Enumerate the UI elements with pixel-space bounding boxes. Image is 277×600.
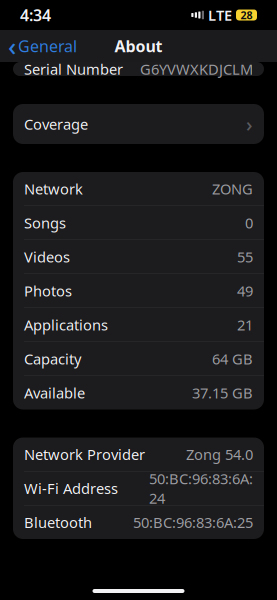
staticText: General (18, 35, 77, 57)
staticText: About (114, 35, 162, 57)
staticText: Videos (24, 247, 70, 266)
staticText: Capacity (24, 349, 81, 368)
staticText: Applications (24, 315, 108, 334)
staticText: Wi-Fi Address (24, 478, 118, 498)
staticText: G6YVWXKDJCLM (140, 59, 253, 79)
staticText: Available (24, 383, 85, 402)
staticText: Photos (24, 281, 72, 300)
staticText: 0 (245, 213, 253, 232)
staticText: 55 (237, 247, 253, 266)
staticText: 37.15 GB (192, 383, 253, 402)
staticText: › (246, 111, 253, 137)
staticText: Network (24, 179, 83, 198)
staticText: 64 GB (212, 349, 253, 368)
staticText: Bluetooth (24, 512, 92, 532)
staticText: 50:BC:96:83:6A:24 (149, 469, 253, 508)
button[interactable]: ‹ (0, 24, 77, 68)
staticText: Network Provider (24, 444, 145, 464)
staticText: 4:34 (20, 4, 51, 26)
staticText: 21 (237, 315, 253, 334)
staticText: LTE (208, 5, 232, 25)
staticText: 28 (240, 8, 252, 22)
staticText: ‹ (8, 29, 16, 63)
staticText: Coverage (24, 114, 88, 134)
button[interactable]: Coverage (13, 104, 264, 144)
staticText: Songs (24, 213, 66, 232)
staticText: Serial Number (24, 59, 123, 79)
staticText: 49 (237, 281, 253, 300)
staticText: ZONG (212, 179, 253, 198)
staticText: Zong 54.0 (186, 444, 253, 464)
staticText: 50:BC:96:83:6A:25 (133, 512, 253, 532)
